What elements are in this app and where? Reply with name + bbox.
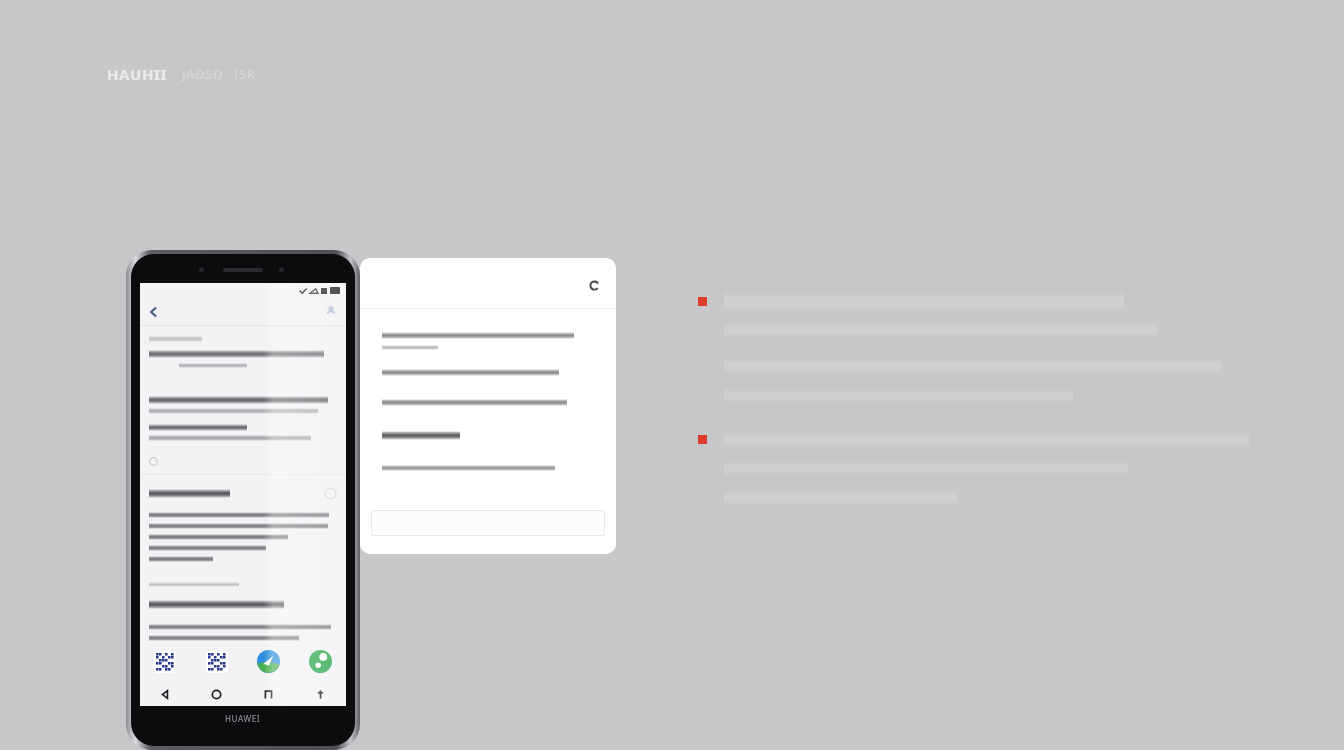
button[interactable]: QR code: [206, 651, 228, 673]
button[interactable]: Options: [324, 487, 337, 500]
staticText: ISR: [234, 65, 256, 83]
button[interactable]: [371, 510, 605, 536]
button[interactable]: Home: [191, 682, 242, 706]
staticText: HAUHII: [107, 64, 167, 84]
button[interactable]: Refresh: [586, 277, 603, 294]
button[interactable]: More: [149, 457, 158, 466]
button[interactable]: Up: [294, 682, 346, 706]
button[interactable]: QR code: [154, 651, 176, 673]
button[interactable]: Back: [148, 306, 160, 318]
staticText: HUAWEI: [225, 713, 261, 724]
button[interactable]: Recent apps: [242, 682, 294, 706]
button[interactable]: Account: [325, 305, 337, 317]
button[interactable]: Share app: [257, 650, 280, 673]
staticText: JADSD: [182, 65, 223, 83]
button[interactable]: Back: [140, 682, 191, 706]
button[interactable]: Message app: [309, 650, 332, 673]
